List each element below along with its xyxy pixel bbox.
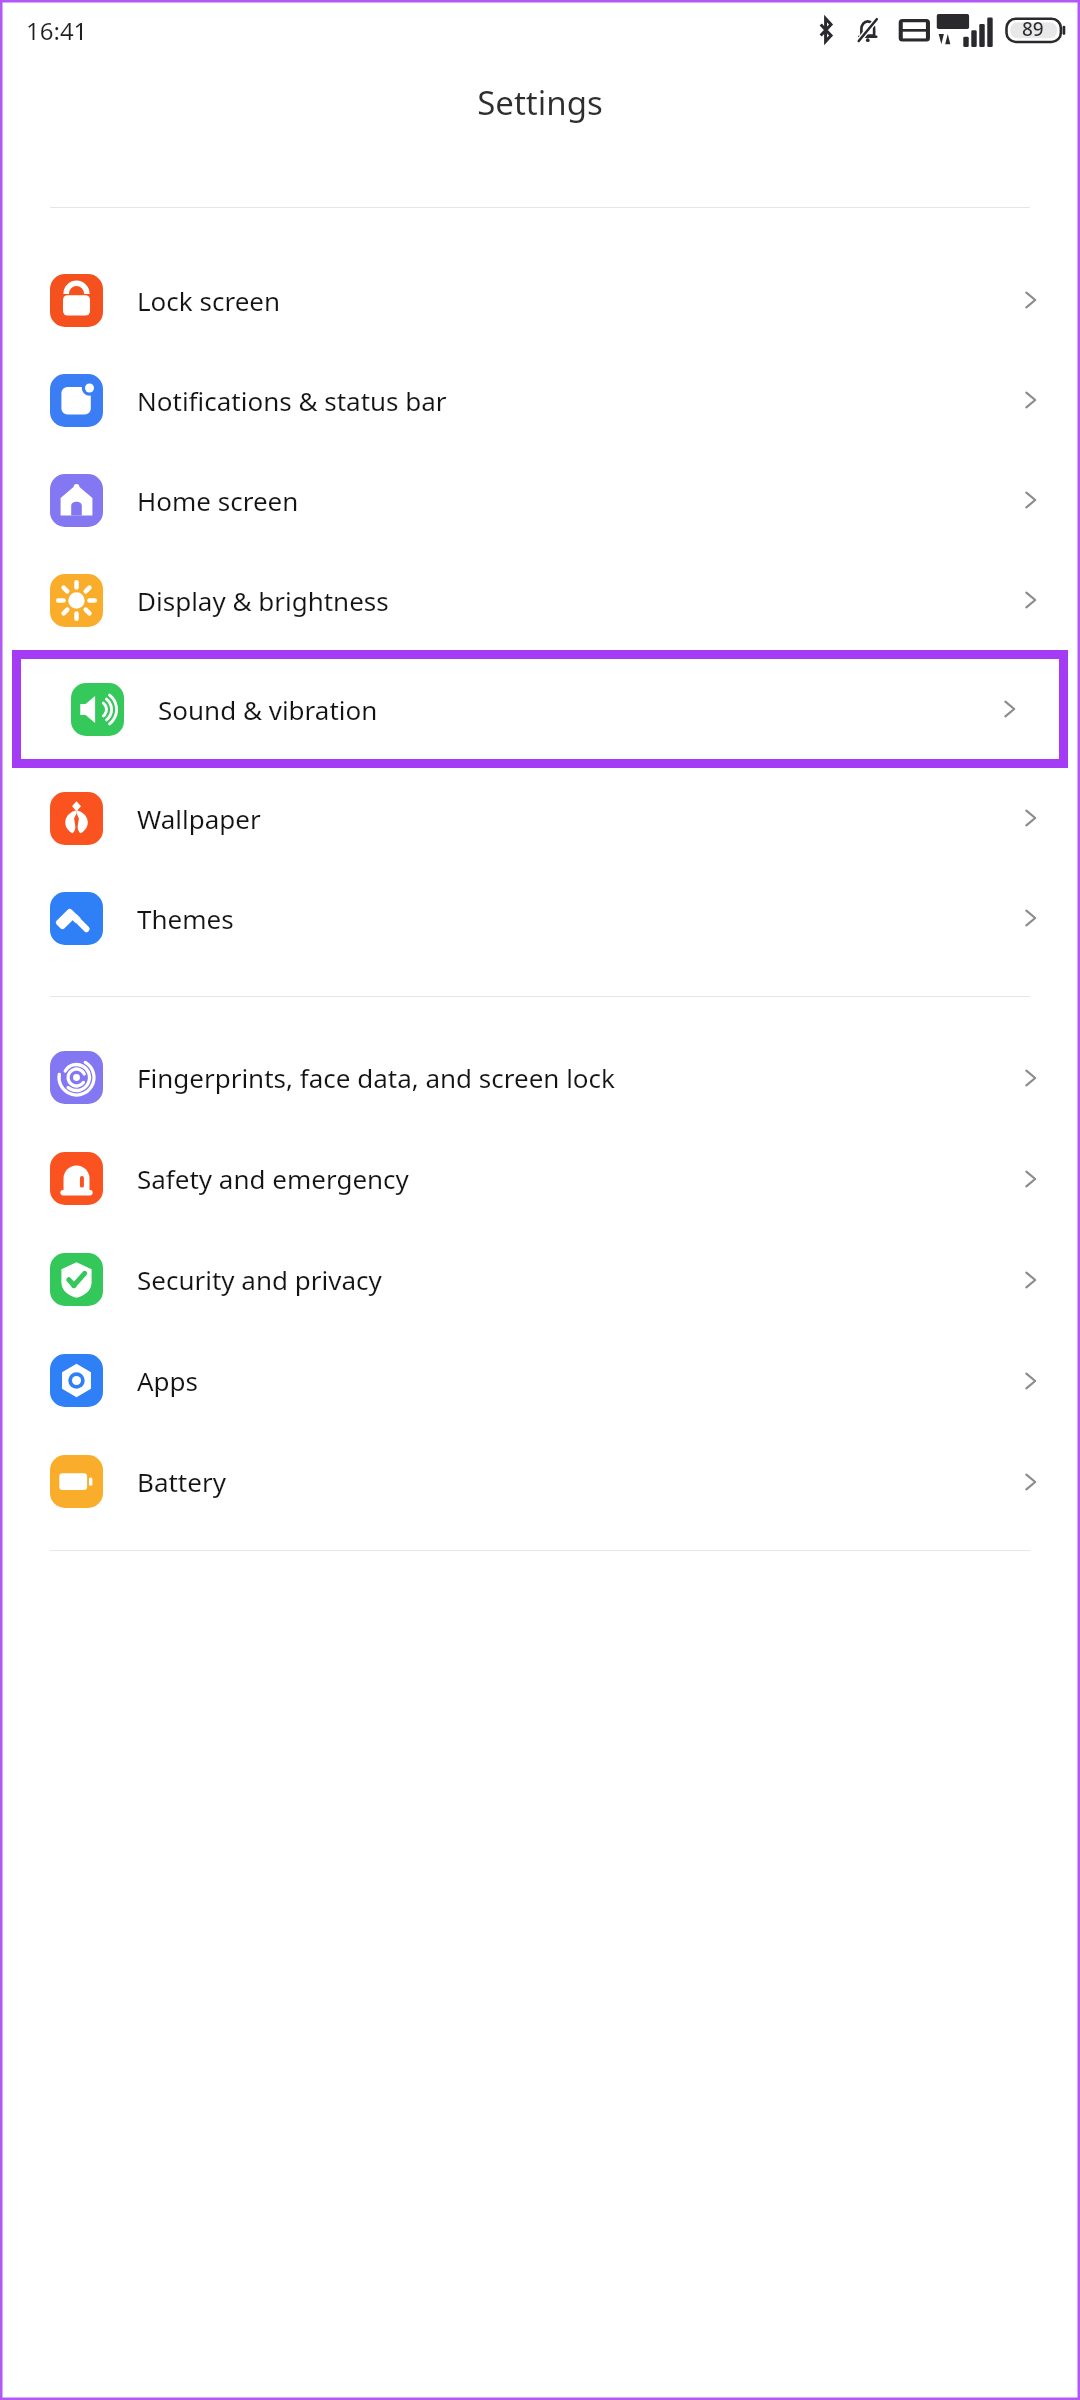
button[interactable]: Security and privacy: [0, 1229, 1080, 1330]
staticText: 89: [1022, 16, 1044, 42]
button[interactable]: Display & brightness: [0, 550, 1080, 650]
staticText: Themes: [137, 901, 234, 936]
staticText: Apps: [137, 1363, 199, 1398]
staticText: Lock screen: [137, 283, 281, 318]
staticText: Settings: [477, 80, 603, 125]
button[interactable]: Notifications & status bar: [0, 350, 1080, 450]
staticText: Home screen: [137, 483, 299, 518]
staticText: Fingerprints, face data, and screen lock: [137, 1060, 615, 1095]
button[interactable]: Sound & vibration: [21, 659, 1059, 759]
staticText: 16:41: [26, 14, 88, 47]
button[interactable]: Themes: [0, 868, 1080, 968]
button[interactable]: Fingerprints, face data, and screen lock: [0, 1027, 1080, 1128]
staticText: Battery: [137, 1464, 226, 1499]
button[interactable]: Apps: [0, 1330, 1080, 1431]
staticText: Safety and emergency: [137, 1161, 409, 1196]
button[interactable]: Lock screen: [0, 250, 1080, 350]
staticText: Display & brightness: [137, 583, 389, 618]
staticText: Sound & vibration: [158, 692, 378, 727]
staticText: Notifications & status bar: [137, 383, 447, 418]
button[interactable]: Safety and emergency: [0, 1128, 1080, 1229]
button[interactable]: Home screen: [0, 450, 1080, 550]
button[interactable]: Wallpaper: [0, 768, 1080, 868]
button[interactable]: Battery: [0, 1431, 1080, 1532]
staticText: Wallpaper: [137, 801, 261, 836]
staticText: Security and privacy: [137, 1262, 382, 1297]
